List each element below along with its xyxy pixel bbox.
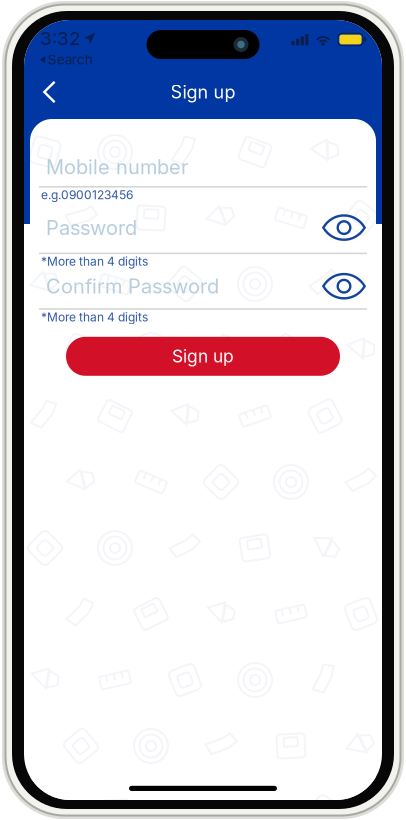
staticText: Sign up (172, 346, 234, 367)
button[interactable]: Sign up (66, 337, 340, 376)
button[interactable]: Show password (322, 211, 376, 245)
staticText: Password (46, 215, 137, 240)
button[interactable]: Show password (322, 269, 376, 303)
staticText: Confirm Password (46, 274, 219, 298)
staticText: *More than 4 digits (41, 310, 148, 324)
staticText: *More than 4 digits (41, 254, 148, 269)
staticText: Sign up (170, 81, 235, 103)
staticText: 3:32 (40, 27, 80, 50)
staticText: e.g.0900123456 (41, 188, 133, 202)
staticText: Mobile number (46, 155, 188, 179)
staticText: Search (48, 52, 93, 68)
button[interactable]: Back (24, 70, 74, 113)
